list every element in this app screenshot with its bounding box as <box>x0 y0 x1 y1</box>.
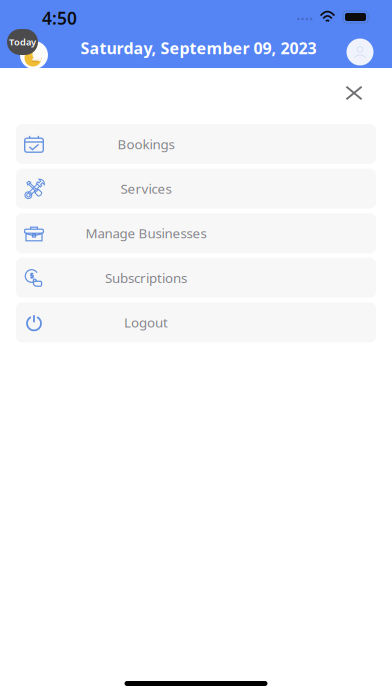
staticText: Services <box>120 180 171 197</box>
button[interactable]: Profile <box>344 32 376 64</box>
button[interactable]: Bookings <box>16 124 376 164</box>
staticText: Today <box>9 36 36 48</box>
button[interactable]: Manage Businesses <box>16 213 376 253</box>
staticText: Subscriptions <box>105 269 187 287</box>
staticText: Logout <box>124 313 168 331</box>
staticText: Manage Businesses <box>85 224 206 242</box>
button[interactable]: Services <box>16 169 376 209</box>
staticText: 4:50 <box>42 6 77 29</box>
button[interactable]: Close <box>333 66 375 108</box>
staticText: Bookings <box>117 135 174 153</box>
button[interactable]: Subscriptions <box>16 258 376 298</box>
button[interactable]: Logout <box>16 302 376 342</box>
staticText: Saturday, September 09, 2023 <box>80 37 316 59</box>
